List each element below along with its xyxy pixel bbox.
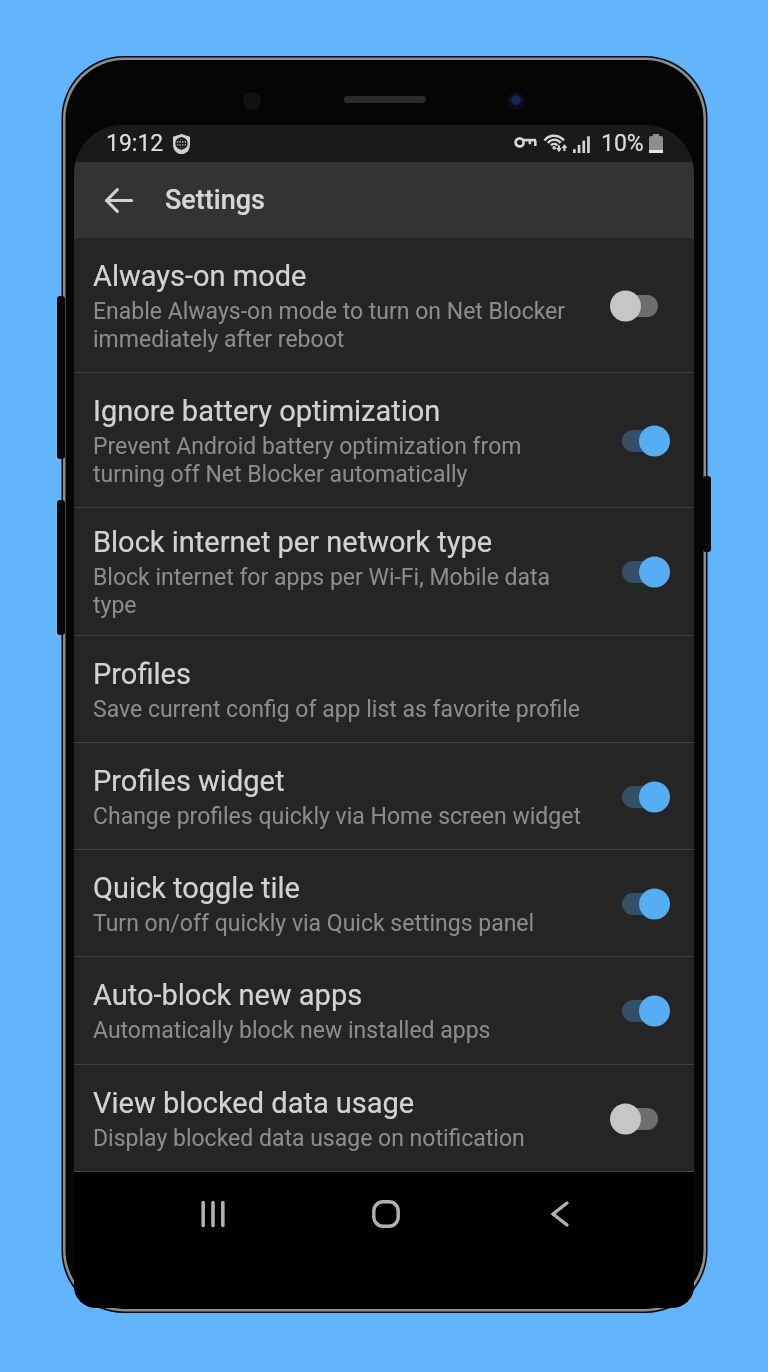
staticText: Enable Always-on mode to turn on Net Blo… xyxy=(93,297,585,353)
button[interactable]: Back xyxy=(88,169,150,231)
button[interactable]: View blocked data usage xyxy=(74,1065,694,1172)
button[interactable] xyxy=(610,290,670,322)
button[interactable] xyxy=(610,781,670,813)
button[interactable]: Home xyxy=(351,1186,421,1242)
staticText: Turn on/off quickly via Quick settings p… xyxy=(93,909,535,937)
button[interactable] xyxy=(610,995,670,1027)
staticText: Automatically block new installed apps xyxy=(93,1016,491,1044)
button[interactable] xyxy=(610,425,670,457)
button[interactable]: Profiles widget xyxy=(74,743,694,850)
staticText: Quick toggle tile xyxy=(93,871,300,905)
button[interactable]: Back xyxy=(525,1186,595,1242)
staticText: Ignore battery optimization xyxy=(93,394,441,428)
button[interactable] xyxy=(610,1103,670,1135)
staticText: Display blocked data usage on notificati… xyxy=(93,1124,525,1152)
staticText: Profiles widget xyxy=(93,764,285,798)
staticText: Settings xyxy=(165,184,265,216)
staticText: Change profiles quickly via Home screen … xyxy=(93,802,581,830)
button[interactable]: Quick toggle tile xyxy=(74,850,694,957)
staticText: Always-on mode xyxy=(93,259,307,293)
staticText: Block internet for apps per Wi-Fi, Mobil… xyxy=(93,563,585,619)
button[interactable]: Always-on mode xyxy=(74,238,694,373)
button[interactable] xyxy=(610,888,670,920)
staticText: Save current config of app list as favor… xyxy=(93,695,580,723)
staticText: 10% xyxy=(601,130,644,157)
staticText: View blocked data usage xyxy=(93,1086,415,1120)
staticText: Profiles xyxy=(93,657,191,691)
staticText: Auto-block new apps xyxy=(93,978,363,1012)
button[interactable]: Recent apps xyxy=(178,1186,248,1242)
staticText: Block internet per network type xyxy=(93,525,493,559)
staticText: Prevent Android battery optimization fro… xyxy=(93,432,585,488)
button[interactable]: Profiles xyxy=(74,636,694,743)
button[interactable]: Block internet per network type xyxy=(74,508,694,636)
button[interactable]: Auto-block new apps xyxy=(74,957,694,1065)
button[interactable] xyxy=(610,556,670,588)
button[interactable]: Ignore battery optimization xyxy=(74,373,694,508)
staticText: 19:12 xyxy=(106,130,164,157)
